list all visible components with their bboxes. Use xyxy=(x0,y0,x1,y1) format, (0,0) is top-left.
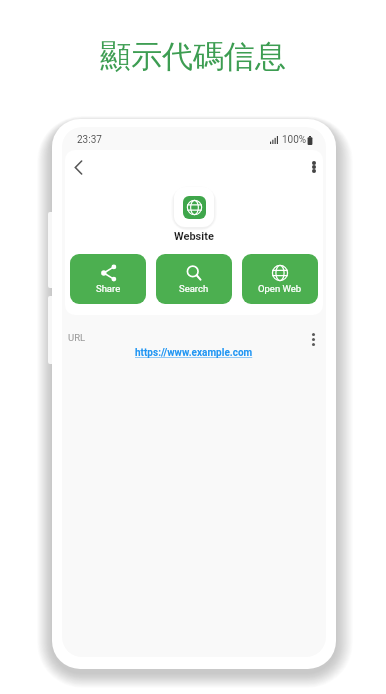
staticText: URL xyxy=(68,332,86,343)
staticText: Website xyxy=(174,230,214,243)
staticText: 100% xyxy=(282,134,307,146)
staticText: https://www.example.com xyxy=(135,347,253,359)
button[interactable]: Share xyxy=(70,254,146,304)
staticText: 23:37 xyxy=(77,134,102,146)
staticText: 顯示代碼信息 xyxy=(100,37,286,76)
button[interactable]: Back xyxy=(67,156,89,178)
staticText: Search xyxy=(179,283,209,294)
button[interactable]: More options xyxy=(304,330,322,348)
button[interactable]: Open Web xyxy=(242,254,318,304)
button[interactable]: Search xyxy=(156,254,232,304)
staticText: Open Web xyxy=(258,283,302,294)
button[interactable]: More options xyxy=(303,156,323,178)
staticText: Share xyxy=(96,283,121,294)
